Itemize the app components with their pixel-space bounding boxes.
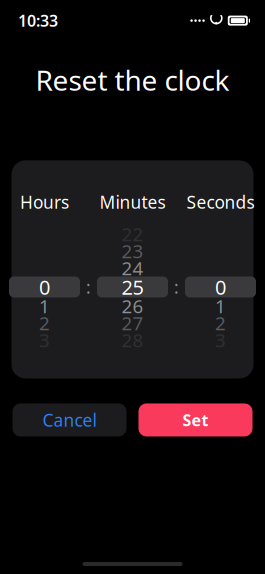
staticText: 10:33	[18, 10, 58, 31]
button[interactable]: Cancel	[12, 403, 126, 436]
staticText: Hours	[20, 190, 69, 213]
staticText: 27	[121, 311, 143, 335]
button[interactable]: Set	[138, 403, 252, 436]
staticText: 3	[215, 328, 226, 352]
staticText: Seconds	[186, 190, 254, 213]
staticText: 23	[121, 239, 143, 263]
staticText: :	[174, 275, 179, 298]
staticText: 26	[121, 294, 143, 318]
staticText: Reset the clock	[35, 61, 229, 98]
staticText: 3	[39, 328, 50, 352]
staticText: Cancel	[42, 408, 96, 431]
staticText: 24	[121, 256, 143, 280]
staticText: :	[86, 275, 91, 298]
staticText: Minutes	[99, 190, 165, 213]
staticText: 28	[121, 328, 143, 352]
staticText: 22	[121, 222, 143, 246]
staticText: 2	[39, 311, 50, 335]
staticText: 0	[39, 274, 50, 300]
staticText: 1	[39, 294, 50, 318]
staticText: 1	[215, 294, 226, 318]
staticText: 0	[215, 274, 226, 300]
staticText: 2	[215, 311, 226, 335]
staticText: 25	[121, 274, 143, 300]
staticText: Set	[182, 409, 208, 430]
